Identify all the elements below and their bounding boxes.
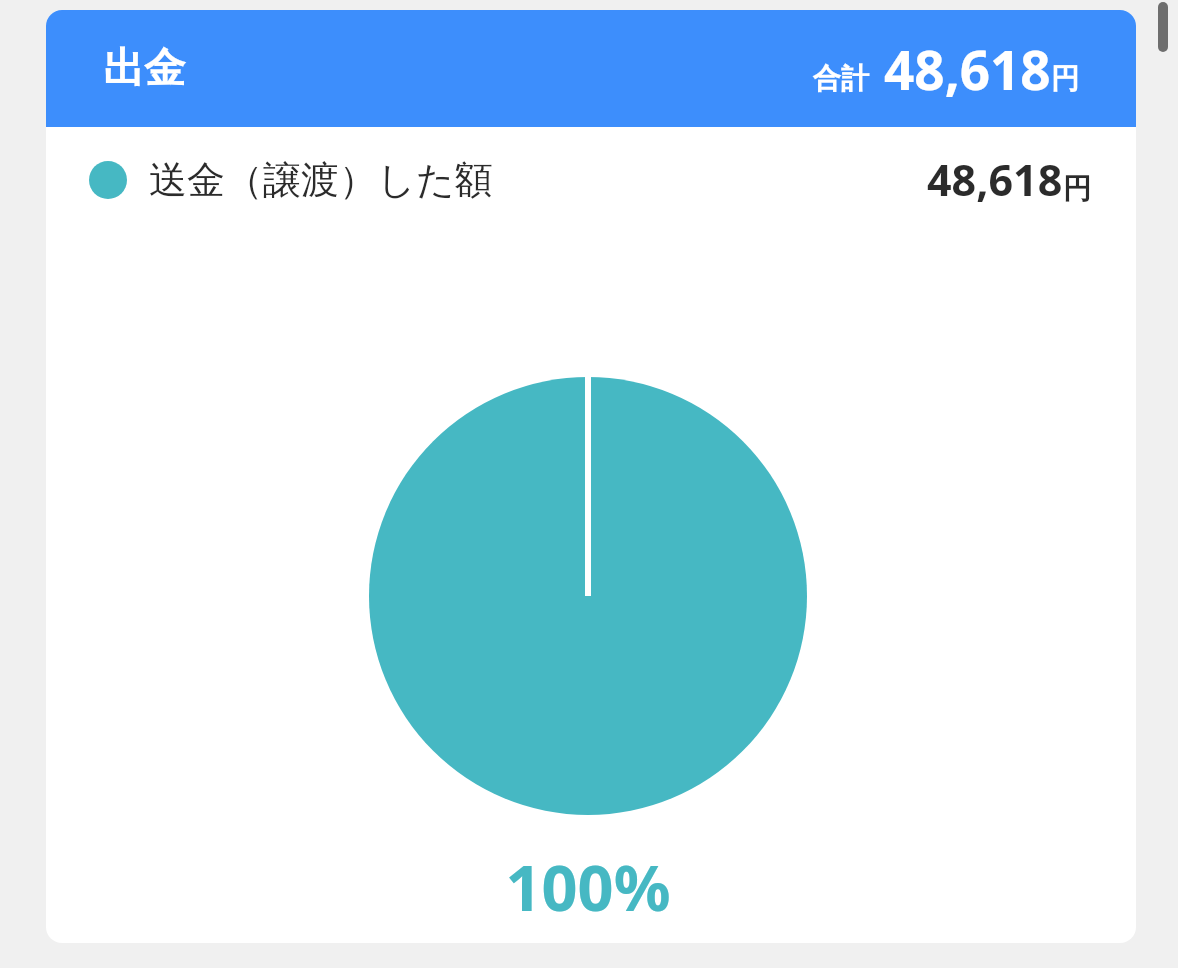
staticText: 円 <box>1063 171 1091 206</box>
staticText: 100% <box>383 844 793 930</box>
staticText: 出金 <box>103 43 185 95</box>
staticText: 合計 <box>813 61 869 96</box>
button[interactable]: 出金 <box>46 10 1136 127</box>
button[interactable]: 送金（譲渡）した額 <box>46 127 1136 232</box>
staticText: 48,618 <box>927 150 1063 209</box>
other: 円グラフ：送金（譲渡）した額 100パーセント <box>46 232 1136 943</box>
staticText: 48,618 <box>884 33 1051 105</box>
staticText: 送金（譲渡）した額 <box>149 156 493 204</box>
staticText: 円 <box>1051 61 1079 96</box>
